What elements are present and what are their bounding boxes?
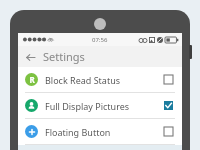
staticText: R (29, 74, 35, 85)
button[interactable]: Full Display Pictures checked (162, 99, 175, 112)
staticText: Settings (43, 49, 85, 64)
button[interactable]: Block Read Status unchecked (162, 73, 175, 86)
staticText: 3G (39, 37, 45, 42)
button[interactable]: Full Display Pictures (18, 93, 182, 118)
staticText: Full Display Pictures (45, 100, 162, 112)
button[interactable]: Floating Button (18, 119, 182, 144)
button[interactable]: R (18, 67, 182, 92)
staticText: Floating Button (45, 126, 162, 138)
button[interactable]: Back (22, 49, 38, 65)
button[interactable]: Floating Button unchecked (162, 125, 175, 138)
staticText: 07:56 (92, 36, 108, 44)
staticText: Block Read Status (45, 74, 162, 86)
